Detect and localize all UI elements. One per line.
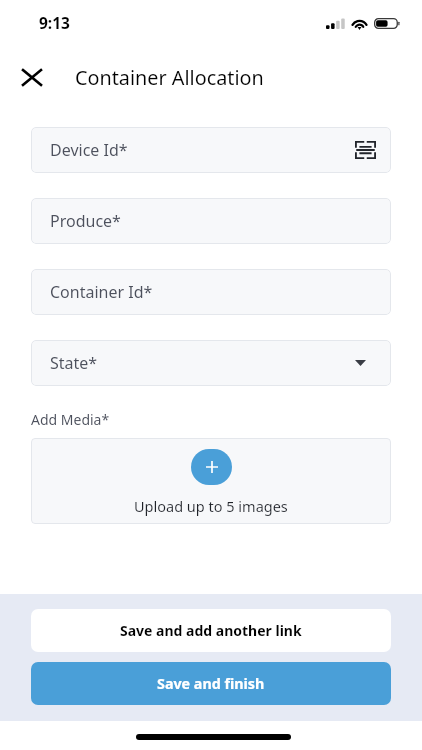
staticText: Save and finish bbox=[157, 674, 265, 693]
staticText: Device Id* bbox=[50, 139, 128, 161]
button[interactable]: Produce* bbox=[31, 198, 391, 244]
button[interactable]: Save and add another link bbox=[31, 609, 391, 652]
staticText: Produce* bbox=[50, 210, 121, 232]
button[interactable]: Device Id* bbox=[31, 127, 391, 173]
button[interactable]: Upload up to 5 images bbox=[31, 438, 391, 524]
button[interactable]: State* bbox=[31, 340, 391, 386]
button[interactable]: Container Id* bbox=[31, 269, 391, 315]
staticText: Add Media* bbox=[31, 410, 110, 429]
staticText: Container Id* bbox=[50, 281, 153, 303]
staticText: Upload up to 5 images bbox=[134, 496, 288, 516]
staticText: Save and add another link bbox=[120, 621, 302, 640]
button[interactable]: Save and finish bbox=[31, 662, 391, 705]
button[interactable]: Close bbox=[14, 59, 50, 95]
staticText: State* bbox=[50, 352, 98, 374]
staticText: Container Allocation bbox=[75, 64, 264, 91]
staticText: 9:13 bbox=[39, 12, 70, 33]
